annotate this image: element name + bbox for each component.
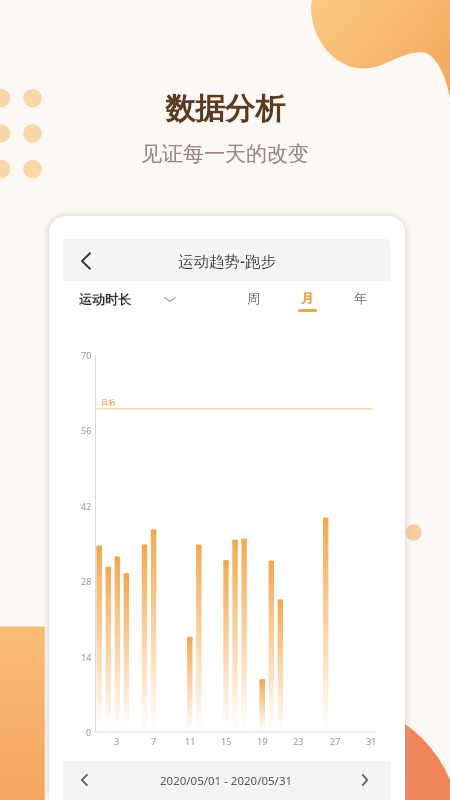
- button[interactable]: 年: [347, 285, 373, 312]
- staticText: 7: [151, 735, 157, 747]
- staticText: 31: [366, 735, 377, 747]
- staticText: 56: [81, 424, 92, 436]
- button[interactable]: Back: [70, 245, 102, 277]
- button[interactable]: 周: [240, 285, 266, 312]
- staticText: 运动趋势-跑步: [178, 250, 276, 271]
- staticText: 42: [81, 500, 92, 512]
- staticText: 周: [247, 290, 260, 306]
- button[interactable]: 运动时长: [73, 285, 182, 313]
- staticText: 19: [257, 735, 268, 747]
- staticText: 3: [114, 735, 120, 747]
- button[interactable]: Next month: [349, 764, 381, 796]
- staticText: 70: [81, 349, 92, 361]
- staticText: 28: [81, 575, 92, 587]
- staticText: 2020/05/01 - 2020/05/31: [160, 773, 293, 789]
- staticText: 月: [301, 290, 314, 306]
- staticText: 见证每一天的改变: [141, 141, 309, 167]
- button[interactable]: 月: [294, 285, 320, 312]
- staticText: 目标: [101, 398, 116, 407]
- staticText: 14: [81, 651, 92, 663]
- staticText: 23: [293, 735, 304, 747]
- button[interactable]: Previous month: [68, 764, 100, 796]
- staticText: 年: [354, 290, 367, 306]
- staticText: 运动时长: [79, 291, 131, 307]
- staticText: 11: [185, 735, 196, 747]
- staticText: 15: [221, 735, 232, 747]
- staticText: 数据分析: [165, 90, 285, 128]
- staticText: 27: [330, 735, 341, 747]
- staticText: 0: [86, 726, 92, 738]
